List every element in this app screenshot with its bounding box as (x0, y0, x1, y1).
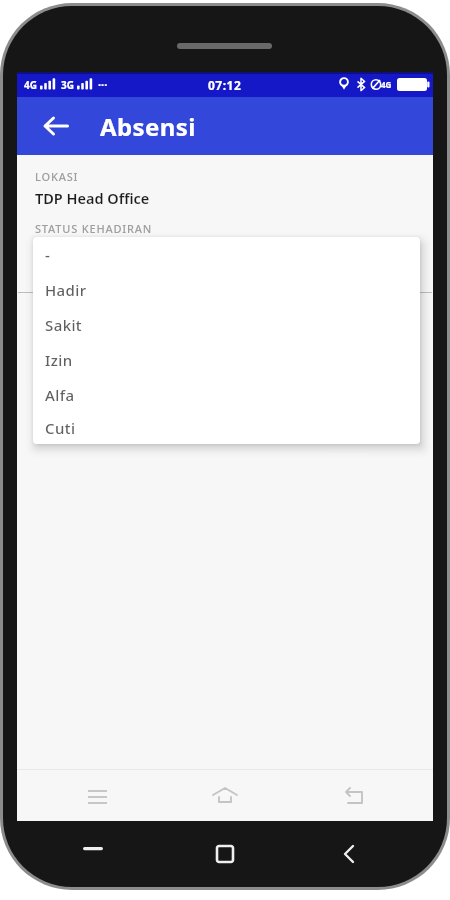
staticText: - (45, 245, 51, 265)
button[interactable]: Alfa (33, 377, 420, 412)
button[interactable] (17, 97, 83, 155)
staticText: Cuti (45, 418, 76, 438)
staticText: 07:12 (208, 77, 242, 93)
staticText: Izin (45, 350, 73, 370)
button[interactable]: Hadir (33, 272, 420, 307)
button[interactable]: Cuti (33, 412, 420, 444)
button[interactable]: Izin (33, 342, 420, 377)
staticText: TDP Head Office (35, 188, 150, 208)
staticText: STATUS KEHADIRAN (35, 221, 153, 236)
staticText: 4G (24, 78, 37, 92)
staticText: ··· (98, 77, 108, 92)
staticText: 4G (381, 79, 392, 90)
staticText: 3G (61, 78, 74, 92)
staticText: Hadir (45, 280, 87, 300)
staticText: LOKASI (35, 169, 79, 184)
staticText: Absensi (100, 110, 196, 143)
staticText: Sakit (45, 315, 83, 335)
staticText: Alfa (45, 385, 75, 405)
button[interactable]: Sakit (33, 307, 420, 342)
